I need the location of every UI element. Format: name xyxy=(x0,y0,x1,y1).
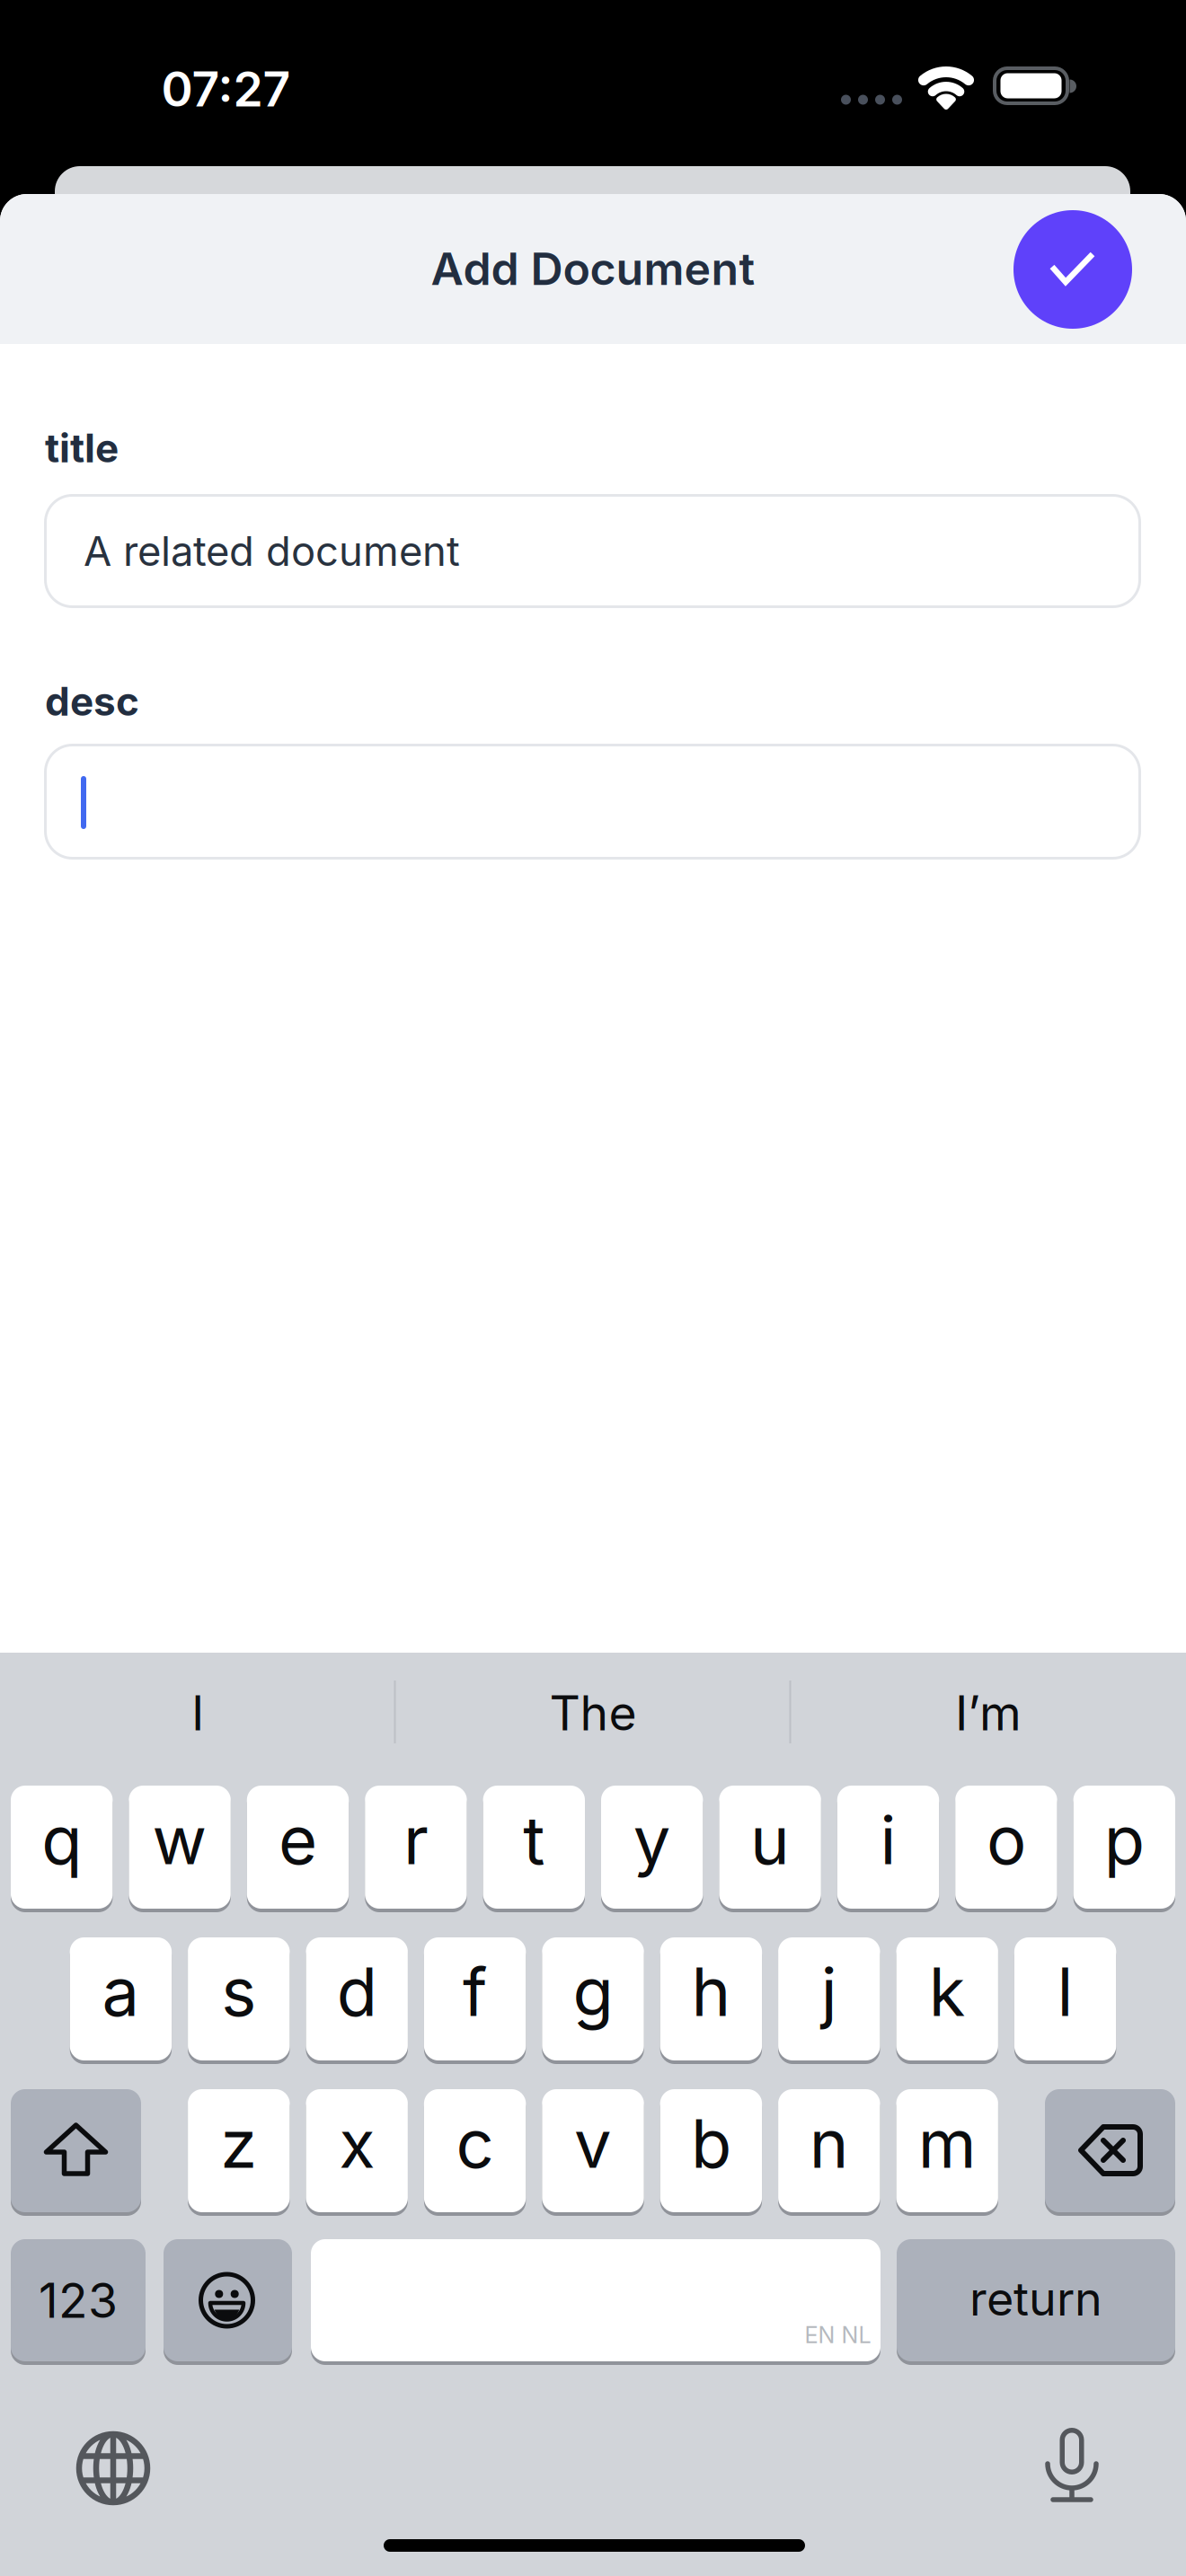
button[interactable]: p xyxy=(1073,1786,1175,1909)
staticText: y xyxy=(633,1800,671,1880)
button[interactable]: I’m xyxy=(795,1650,1182,1776)
button[interactable]: Shift xyxy=(11,2089,141,2212)
button[interactable]: n xyxy=(778,2089,880,2212)
button[interactable]: title, A related document xyxy=(44,494,1141,608)
staticText: EN NL xyxy=(805,2321,871,2349)
button[interactable]: u xyxy=(719,1786,821,1909)
button[interactable]: l xyxy=(1014,1937,1116,2060)
staticText: h xyxy=(691,1951,731,2032)
staticText: w xyxy=(152,1800,207,1880)
staticText: I xyxy=(191,1684,204,1742)
button[interactable]: q xyxy=(11,1786,113,1909)
staticText: d xyxy=(337,1951,377,2032)
button[interactable]: The xyxy=(400,1650,786,1776)
staticText: desc xyxy=(45,677,139,725)
button[interactable]: z xyxy=(188,2089,290,2212)
button[interactable]: x xyxy=(306,2089,408,2212)
button[interactable]: r xyxy=(365,1786,467,1909)
staticText: g xyxy=(573,1951,613,2032)
button[interactable]: a xyxy=(70,1937,172,2060)
button[interactable]: Return xyxy=(897,2239,1175,2361)
button[interactable]: Confirm xyxy=(1013,210,1132,329)
staticText: b xyxy=(691,2103,731,2184)
button[interactable]: b xyxy=(660,2089,762,2212)
staticText: v xyxy=(574,2103,612,2184)
button[interactable]: Delete xyxy=(1045,2089,1175,2212)
staticText: l xyxy=(1057,1951,1073,2032)
staticText: 07:27 xyxy=(161,60,291,118)
button[interactable]: v xyxy=(542,2089,644,2212)
staticText: a xyxy=(102,1951,140,2032)
button[interactable]: o xyxy=(955,1786,1057,1909)
button[interactable]: desc xyxy=(44,744,1141,860)
staticText: m xyxy=(918,2103,976,2184)
button[interactable]: e xyxy=(247,1786,349,1909)
button[interactable]: i xyxy=(837,1786,939,1909)
button[interactable]: t xyxy=(483,1786,585,1909)
button[interactable]: Next keyboard xyxy=(64,2419,163,2518)
staticText: 123 xyxy=(39,2271,118,2329)
button[interactable]: Dictate xyxy=(1022,2416,1121,2515)
button[interactable]: k xyxy=(896,1937,998,2060)
staticText: s xyxy=(221,1951,256,2032)
staticText: p xyxy=(1104,1800,1144,1880)
button[interactable]: m xyxy=(896,2089,998,2212)
button[interactable]: Emoji xyxy=(164,2239,292,2361)
button[interactable]: y xyxy=(601,1786,703,1909)
staticText: return xyxy=(969,2270,1102,2327)
staticText: n xyxy=(809,2103,849,2184)
staticText: q xyxy=(42,1800,82,1880)
staticText: r xyxy=(403,1800,428,1880)
button[interactable]: f xyxy=(424,1937,526,2060)
button[interactable]: I xyxy=(4,1650,391,1776)
staticText: f xyxy=(463,1951,487,2032)
staticText: Add Document xyxy=(431,241,755,296)
staticText: x xyxy=(339,2103,375,2184)
button[interactable]: Numbers xyxy=(11,2239,146,2361)
button[interactable]: j xyxy=(778,1937,880,2060)
staticText: u xyxy=(750,1800,790,1880)
staticText: c xyxy=(456,2103,494,2184)
staticText: k xyxy=(929,1951,966,2032)
staticText: t xyxy=(523,1800,545,1880)
staticText: The xyxy=(549,1684,637,1742)
staticText: I’m xyxy=(955,1684,1022,1742)
staticText: j xyxy=(821,1951,837,2032)
button[interactable]: h xyxy=(660,1937,762,2060)
button[interactable]: d xyxy=(306,1937,408,2060)
button[interactable]: c xyxy=(424,2089,526,2212)
button[interactable]: Space xyxy=(311,2239,881,2361)
staticText: title xyxy=(45,424,119,472)
staticText: i xyxy=(880,1800,896,1880)
staticText: z xyxy=(220,2103,257,2184)
button[interactable]: g xyxy=(542,1937,644,2060)
button[interactable]: w xyxy=(129,1786,231,1909)
staticText: A related document xyxy=(84,526,460,576)
staticText: e xyxy=(279,1800,317,1880)
staticText: o xyxy=(986,1800,1026,1880)
button[interactable]: s xyxy=(188,1937,290,2060)
